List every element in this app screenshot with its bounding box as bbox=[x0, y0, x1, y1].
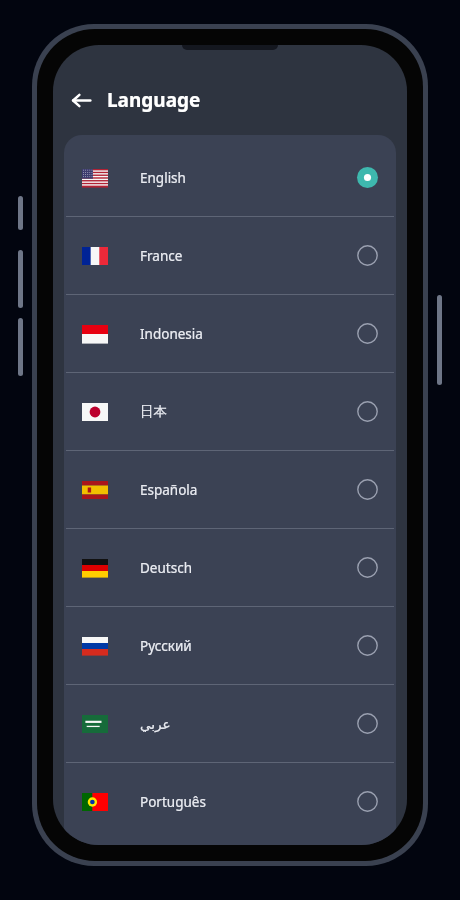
staticText: France bbox=[140, 247, 357, 265]
button[interactable]: France bbox=[64, 217, 396, 294]
staticText: Language bbox=[107, 87, 201, 113]
button[interactable]: Indonesia bbox=[64, 295, 396, 372]
button[interactable]: عربي bbox=[64, 685, 396, 762]
button[interactable]: Русский bbox=[64, 607, 396, 684]
staticText: Deutsch bbox=[140, 559, 357, 577]
button[interactable]: Back bbox=[61, 80, 101, 120]
button[interactable]: English bbox=[64, 139, 396, 216]
staticText: Española bbox=[140, 481, 357, 499]
staticText: Русский bbox=[140, 637, 357, 655]
button[interactable]: Deutsch bbox=[64, 529, 396, 606]
staticText: عربي bbox=[140, 716, 357, 732]
button[interactable]: 日本 bbox=[64, 373, 396, 450]
staticText: 日本 bbox=[140, 403, 357, 420]
staticText: Português bbox=[140, 793, 357, 811]
staticText: English bbox=[140, 169, 357, 187]
staticText: Indonesia bbox=[140, 325, 357, 343]
button[interactable]: Española bbox=[64, 451, 396, 528]
button[interactable]: Português bbox=[64, 763, 396, 840]
